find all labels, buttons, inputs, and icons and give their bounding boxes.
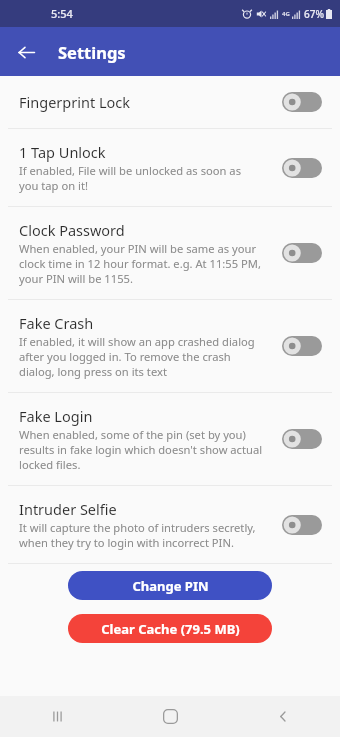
- button[interactable]: Clear Cache (79.5 MB): [68, 614, 272, 643]
- staticText: 1 Tap Unlock: [19, 142, 106, 162]
- button[interactable]: Toggle: [280, 89, 324, 115]
- staticText: When enabled, some of the pin (set by yo…: [19, 427, 263, 472]
- staticText: If enabled, it will show an app crashed …: [19, 334, 255, 379]
- button[interactable]: 1 Tap Unlock: [0, 129, 340, 206]
- button[interactable]: Fingerprint Lock: [0, 76, 340, 128]
- button[interactable]: Toggle: [280, 240, 324, 266]
- staticText: If enabled, File will be unlocked as soo…: [19, 163, 241, 193]
- staticText: Fake Crash: [19, 313, 94, 333]
- button[interactable]: Recents: [33, 696, 81, 737]
- button[interactable]: Back: [259, 696, 307, 737]
- button[interactable]: Clock Password: [0, 207, 340, 299]
- button[interactable]: Change PIN: [68, 571, 272, 600]
- staticText: 5:54: [51, 6, 73, 21]
- staticText: 4G: [282, 10, 290, 18]
- staticText: When enabled, your PIN will be same as y…: [19, 241, 261, 286]
- staticText: Fake Login: [19, 406, 93, 426]
- staticText: Settings: [58, 41, 126, 63]
- button[interactable]: Home: [146, 696, 194, 737]
- button[interactable]: Back: [8, 34, 44, 70]
- staticText: Change PIN: [132, 577, 209, 595]
- button[interactable]: Fake Login: [0, 393, 340, 485]
- button[interactable]: Toggle: [280, 512, 324, 538]
- button[interactable]: Intruder Selfie: [0, 486, 340, 563]
- staticText: Fingerprint Lock: [19, 92, 130, 112]
- button[interactable]: Fake Crash: [0, 300, 340, 392]
- button[interactable]: Toggle: [280, 426, 324, 452]
- button[interactable]: Toggle: [280, 333, 324, 359]
- button[interactable]: Toggle: [280, 155, 324, 181]
- staticText: 67%: [304, 7, 324, 21]
- staticText: Intruder Selfie: [19, 499, 117, 519]
- staticText: Clear Cache (79.5 MB): [101, 620, 240, 638]
- staticText: Clock Password: [19, 220, 125, 240]
- staticText: It will capture the photo of intruders s…: [19, 520, 256, 550]
